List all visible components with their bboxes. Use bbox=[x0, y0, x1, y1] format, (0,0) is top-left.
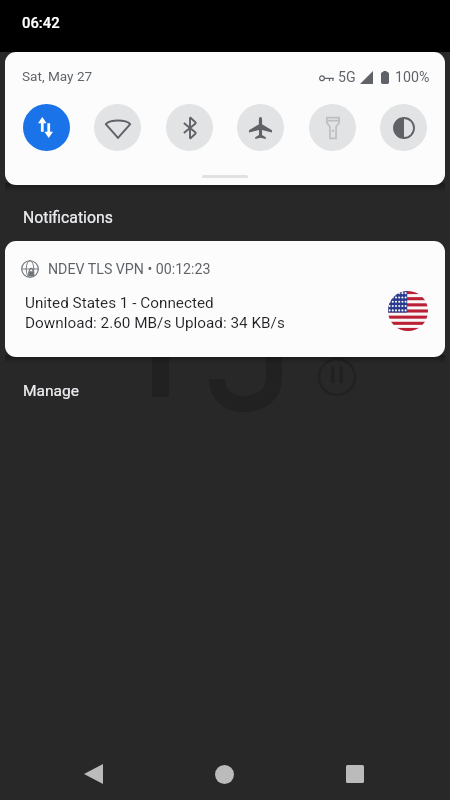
staticText: United States 1 - Connected bbox=[25, 294, 214, 312]
staticText: Sat, May 27 bbox=[22, 68, 93, 84]
staticText: 06:42 bbox=[22, 14, 60, 31]
button[interactable]: Bluetooth bbox=[166, 104, 213, 151]
staticText: 5G bbox=[338, 69, 356, 86]
button[interactable]: Back bbox=[67, 748, 120, 800]
button[interactable]: Airplane mode bbox=[237, 104, 284, 151]
button[interactable]: Mobile data bbox=[23, 104, 70, 151]
staticText: Download: 2.60 MB/s Upload: 34 KB/s bbox=[25, 314, 285, 332]
button[interactable]: Manage bbox=[23, 382, 79, 400]
button[interactable]: Dark theme bbox=[380, 104, 427, 151]
staticText: NDEV TLS VPN • 00:12:23 bbox=[48, 261, 211, 278]
button[interactable]: Wi-Fi bbox=[94, 104, 141, 151]
button[interactable]: Home bbox=[198, 748, 251, 800]
staticText: Notifications bbox=[23, 208, 113, 227]
button[interactable]: Recent apps bbox=[328, 748, 381, 800]
button[interactable]: NDEV TLS VPN • 00:12:23 bbox=[5, 241, 445, 357]
staticText: 100% bbox=[395, 69, 430, 86]
button[interactable]: Flashlight bbox=[309, 104, 356, 151]
